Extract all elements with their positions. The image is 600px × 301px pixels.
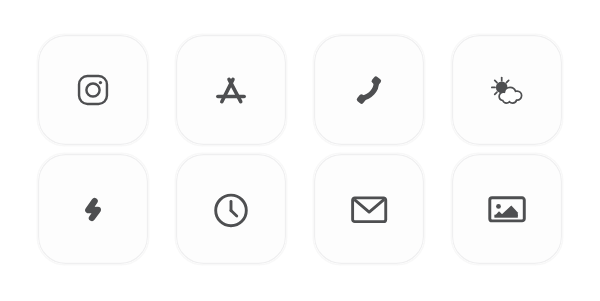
- button[interactable]: Clock: [176, 154, 286, 264]
- button[interactable]: Weather: [452, 35, 562, 145]
- button[interactable]: Mail: [314, 154, 424, 264]
- button[interactable]: App Store: [176, 35, 286, 145]
- button[interactable]: Phone: [314, 35, 424, 145]
- button[interactable]: Instagram: [38, 35, 148, 145]
- button[interactable]: Shortcuts: [38, 154, 148, 264]
- button[interactable]: Photos: [452, 154, 562, 264]
